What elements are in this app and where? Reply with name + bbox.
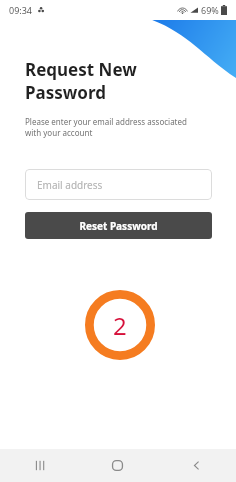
button[interactable]: Email address <box>25 169 212 200</box>
button[interactable]: Back <box>157 449 236 482</box>
staticText: Request New Password <box>25 58 137 104</box>
button[interactable]: Recent apps <box>0 449 78 482</box>
staticText: Email address <box>37 178 103 192</box>
staticText: Please enter your email address associat… <box>25 116 187 138</box>
button[interactable]: Home <box>78 449 157 482</box>
staticText: 69% <box>201 4 219 16</box>
button[interactable]: Reset Password <box>25 212 212 239</box>
staticText: Reset Password <box>79 219 158 233</box>
staticText: 2 <box>113 309 127 342</box>
staticText: 09:34 <box>9 4 33 16</box>
